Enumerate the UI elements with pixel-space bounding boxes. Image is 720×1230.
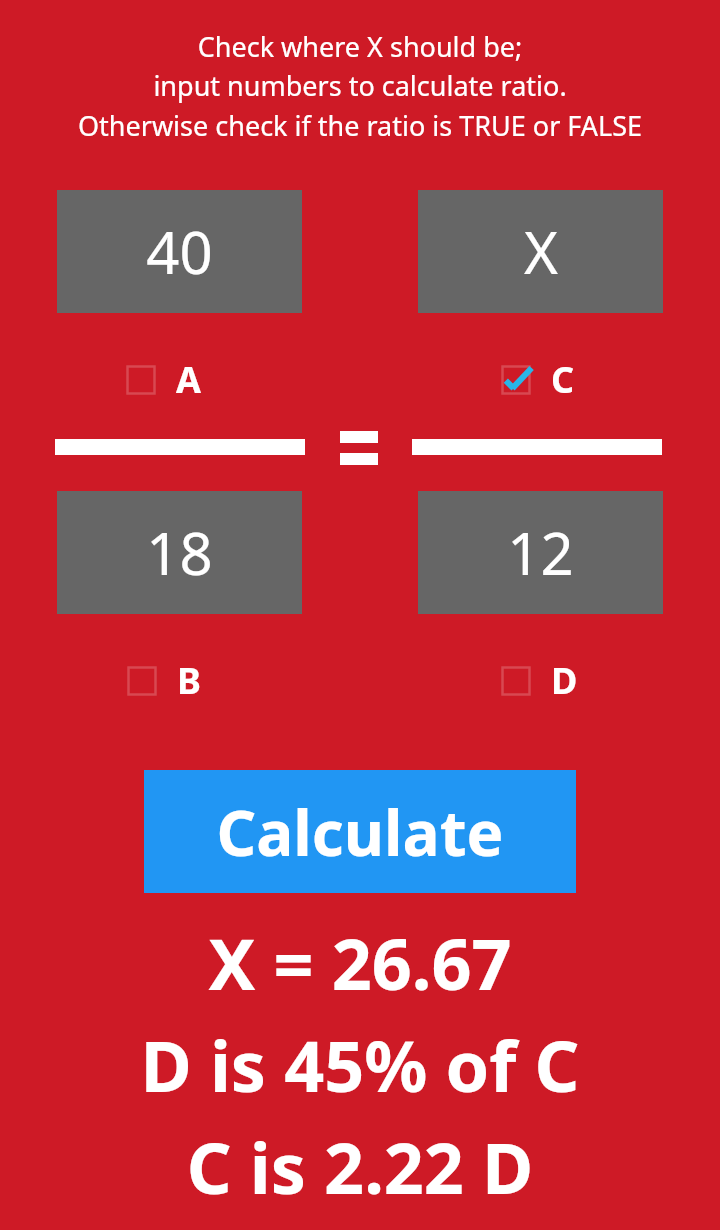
button[interactable]: C (501, 355, 575, 404)
button[interactable]: A (126, 355, 201, 404)
button[interactable]: Calculate (144, 770, 576, 893)
button[interactable]: 40 (57, 190, 302, 313)
staticText: D (551, 656, 578, 705)
staticText: X (524, 212, 558, 291)
staticText: 40 (146, 212, 213, 291)
staticText: B (177, 656, 201, 705)
staticText: A (176, 355, 201, 404)
staticText: Check where X should be; input numbers t… (0, 28, 720, 144)
staticText: 12 (507, 513, 574, 592)
button[interactable]: D (501, 656, 578, 705)
button[interactable]: 18 (57, 491, 302, 614)
staticText: X = 26.67 D is 45% of C C is 2.22 D (0, 915, 720, 1215)
button[interactable]: B (127, 656, 201, 705)
staticText: C (551, 355, 575, 404)
staticText: 18 (146, 513, 213, 592)
button[interactable]: X (418, 190, 663, 313)
staticText: Calculate (216, 790, 504, 874)
button[interactable]: 12 (418, 491, 663, 614)
